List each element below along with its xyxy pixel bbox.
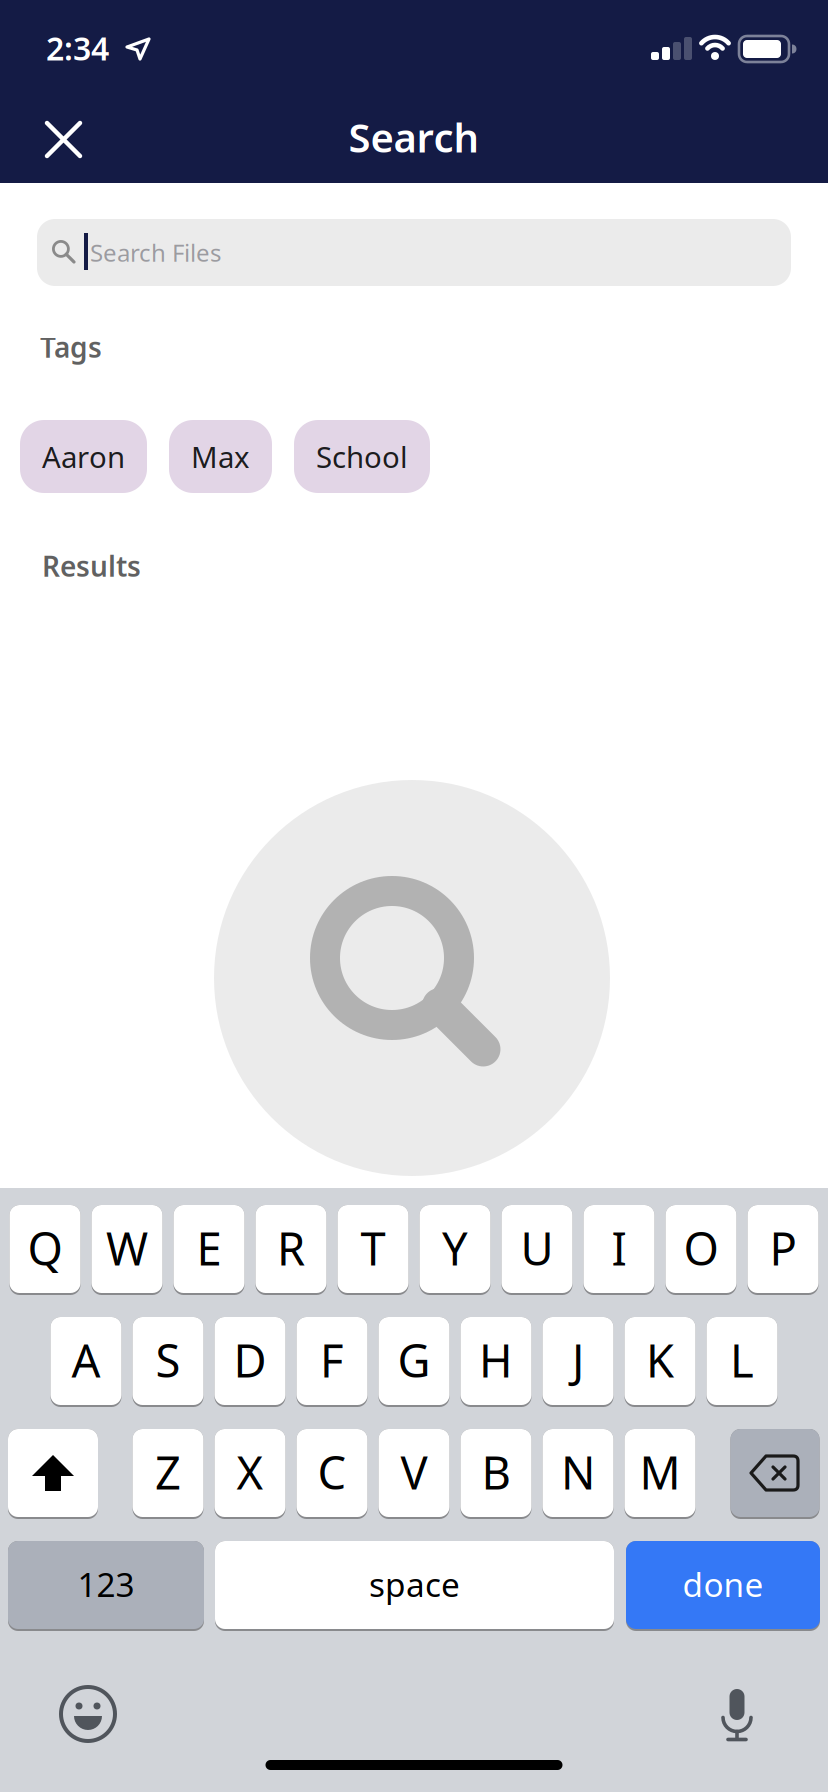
button[interactable]: Q bbox=[9, 1205, 80, 1295]
button[interactable]: M bbox=[624, 1429, 695, 1519]
staticText: W bbox=[106, 1218, 148, 1278]
button[interactable]: V bbox=[378, 1429, 449, 1519]
button[interactable]: L bbox=[706, 1317, 777, 1407]
staticText: O bbox=[683, 1218, 718, 1278]
staticText: Search Files bbox=[90, 237, 221, 268]
button[interactable]: G bbox=[378, 1317, 449, 1407]
button[interactable]: Y bbox=[419, 1205, 490, 1295]
button[interactable]: E bbox=[173, 1205, 244, 1295]
staticText: Max bbox=[191, 437, 250, 476]
button[interactable]: T bbox=[337, 1205, 408, 1295]
button[interactable]: O bbox=[665, 1205, 736, 1295]
staticText: N bbox=[561, 1442, 595, 1502]
staticText: P bbox=[769, 1218, 796, 1278]
staticText: T bbox=[360, 1218, 385, 1278]
staticText: Y bbox=[442, 1218, 468, 1278]
staticText: V bbox=[400, 1442, 427, 1502]
button[interactable]: Aaron bbox=[20, 420, 147, 493]
button[interactable]: done bbox=[626, 1541, 820, 1631]
button[interactable]: R bbox=[255, 1205, 326, 1295]
button[interactable]: Max bbox=[169, 420, 272, 493]
button[interactable]: C bbox=[296, 1429, 367, 1519]
staticText: Search bbox=[348, 110, 479, 163]
staticText: J bbox=[572, 1330, 584, 1390]
button[interactable]: Close bbox=[43, 119, 84, 160]
button[interactable]: K bbox=[624, 1317, 695, 1407]
staticText: G bbox=[397, 1330, 430, 1390]
staticText: R bbox=[277, 1218, 305, 1278]
staticText: S bbox=[155, 1330, 180, 1390]
staticText: D bbox=[233, 1330, 266, 1390]
button[interactable]: X bbox=[214, 1429, 285, 1519]
button[interactable]: N bbox=[542, 1429, 613, 1519]
staticText: Z bbox=[155, 1442, 181, 1502]
button[interactable]: School bbox=[294, 420, 430, 493]
button[interactable]: Search Files bbox=[37, 219, 791, 286]
staticText: Aaron bbox=[42, 437, 125, 476]
button[interactable]: D bbox=[214, 1317, 285, 1407]
button[interactable]: F bbox=[296, 1317, 367, 1407]
button[interactable]: B bbox=[460, 1429, 531, 1519]
staticText: A bbox=[71, 1330, 100, 1390]
button[interactable]: 123 bbox=[8, 1541, 204, 1631]
button[interactable]: S bbox=[132, 1317, 203, 1407]
button[interactable]: Shift bbox=[8, 1429, 98, 1519]
staticText: H bbox=[479, 1330, 513, 1390]
staticText: L bbox=[730, 1330, 754, 1390]
staticText: space bbox=[369, 1562, 460, 1606]
staticText: F bbox=[320, 1330, 344, 1390]
button[interactable]: Dictation bbox=[720, 1688, 754, 1741]
staticText: 123 bbox=[77, 1562, 134, 1606]
button[interactable]: Z bbox=[132, 1429, 203, 1519]
staticText: M bbox=[639, 1442, 680, 1502]
staticText: done bbox=[682, 1562, 763, 1606]
button[interactable]: space bbox=[215, 1541, 614, 1631]
button[interactable]: A bbox=[50, 1317, 121, 1407]
button[interactable]: U bbox=[501, 1205, 572, 1295]
staticText: Tags bbox=[40, 328, 102, 366]
staticText: C bbox=[317, 1442, 346, 1502]
button[interactable]: Emoji bbox=[60, 1686, 116, 1742]
staticText: Results bbox=[42, 547, 141, 585]
button[interactable]: P bbox=[747, 1205, 818, 1295]
button[interactable]: W bbox=[91, 1205, 162, 1295]
staticText: 2:34 bbox=[46, 27, 109, 69]
staticText: Q bbox=[27, 1218, 62, 1278]
button[interactable]: H bbox=[460, 1317, 531, 1407]
staticText: B bbox=[481, 1442, 510, 1502]
button[interactable]: Delete bbox=[730, 1429, 819, 1519]
staticText: K bbox=[646, 1330, 674, 1390]
staticText: X bbox=[236, 1442, 263, 1502]
staticText: E bbox=[196, 1218, 221, 1278]
staticText: U bbox=[520, 1218, 553, 1278]
button[interactable]: I bbox=[583, 1205, 654, 1295]
button[interactable]: J bbox=[542, 1317, 613, 1407]
staticText: I bbox=[611, 1218, 626, 1278]
staticText: School bbox=[316, 437, 408, 476]
